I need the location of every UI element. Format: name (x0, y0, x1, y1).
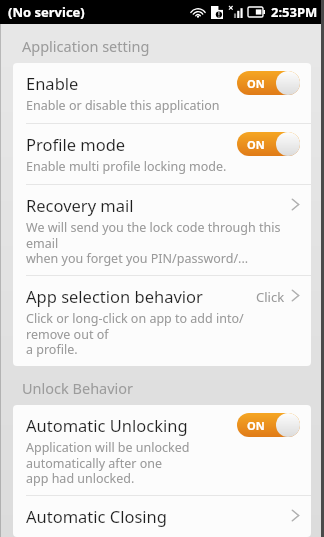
staticText: Application will be unlocked automatical… (26, 439, 237, 486)
staticText: Profile mode (26, 133, 126, 155)
button[interactable]: Toggle on (237, 132, 300, 156)
button[interactable]: Toggle on (237, 71, 300, 95)
staticText: ON (247, 137, 265, 152)
staticText: Enable or disable this application (26, 97, 220, 114)
staticText: Automatic Closing (26, 505, 167, 527)
button[interactable]: Profile mode (13, 124, 311, 184)
staticText: We will send you the lock code through t… (26, 219, 291, 266)
staticText: Click or long-click on app to add into/r… (26, 310, 256, 357)
staticText: Click (256, 288, 285, 306)
staticText: ON (247, 418, 265, 433)
button[interactable]: Recovery mail (13, 185, 311, 275)
button[interactable]: Automatic Unlocking (13, 405, 311, 495)
staticText: Recovery mail (26, 194, 134, 216)
staticText: App selection behavior (26, 285, 203, 307)
staticText: Enable multi profile locking mode. (26, 158, 227, 175)
button[interactable]: Enable (13, 63, 311, 123)
button[interactable]: Toggle on (237, 413, 300, 437)
staticText: Unlock Behavior (22, 378, 134, 398)
staticText: (No service) (8, 3, 85, 21)
staticText: Enable (26, 72, 79, 94)
staticText: 2:53PM (271, 3, 318, 21)
button[interactable]: Automatic Closing (13, 496, 311, 537)
staticText: ON (247, 76, 265, 91)
staticText: Automatic Unlocking (26, 414, 188, 436)
button[interactable]: App selection behavior (13, 276, 311, 366)
staticText: Application setting (22, 36, 150, 56)
